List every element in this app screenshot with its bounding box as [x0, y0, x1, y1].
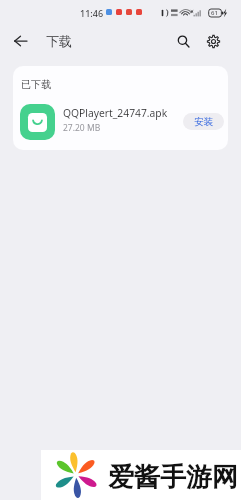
- staticText: 爱酱手游网: [108, 461, 238, 494]
- staticText: 11:46: [80, 7, 104, 19]
- staticText: 下载: [46, 33, 72, 49]
- staticText: 27.20 MB: [63, 122, 101, 134]
- button[interactable]: 安装: [183, 113, 224, 130]
- staticText: QQPlayert_24747.apk: [63, 106, 168, 120]
- button[interactable]: Settings: [198, 22, 228, 60]
- staticText: 61: [211, 9, 218, 17]
- button[interactable]: Search: [168, 22, 198, 60]
- staticText: 安装: [194, 116, 213, 128]
- staticText: 已下载: [21, 78, 51, 91]
- button[interactable]: Back: [0, 22, 46, 60]
